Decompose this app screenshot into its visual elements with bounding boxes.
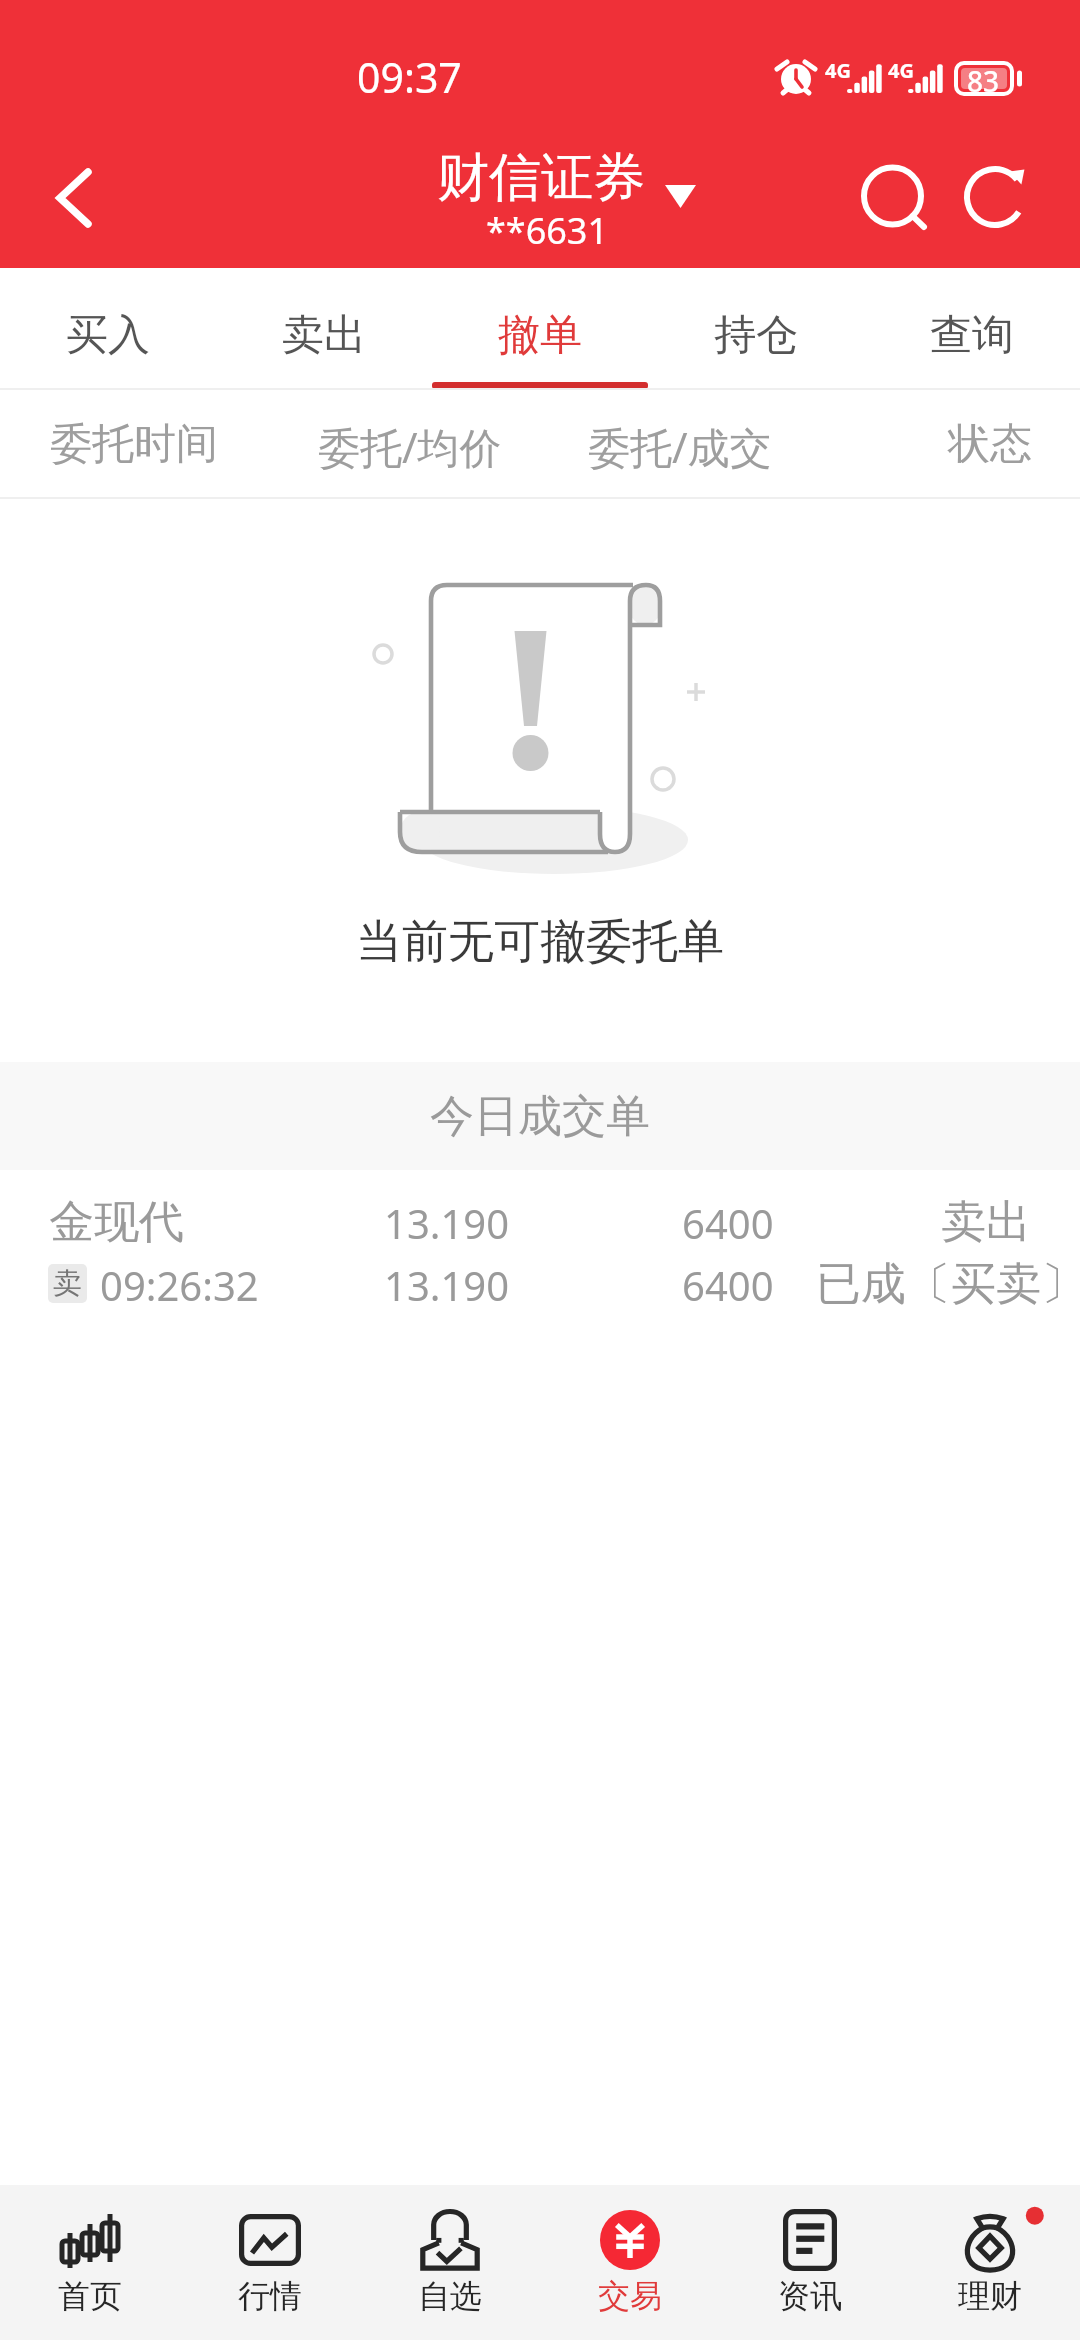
staticText: 持仓 [714,309,798,362]
staticText: 资讯 [778,2276,842,2316]
staticText: 13.190 [384,1258,510,1312]
button[interactable]: 首页 [0,2185,180,2340]
staticText: 买入 [66,309,150,362]
staticText: 09:26:32 [100,1258,259,1312]
staticText: 当前无可撤委托单 [356,913,724,971]
staticText: 4G [888,57,914,84]
button[interactable]: Back [29,152,121,244]
button[interactable]: 理财 [900,2185,1080,2340]
button[interactable]: 资讯 [720,2185,900,2340]
button[interactable]: 财信证券 [380,140,720,260]
staticText: 6400 [682,1196,774,1250]
staticText: 撤单 [498,309,582,362]
button[interactable]: Refresh [949,151,1041,243]
staticText: 委托时间 [50,418,218,471]
staticText: 4G [825,57,851,84]
staticText: 09:37 [357,49,462,105]
staticText: 理财 [958,2276,1022,2316]
button[interactable]: 持仓 [648,268,864,390]
button[interactable]: 行情 [180,2185,360,2340]
button[interactable]: 查询 [864,268,1080,390]
button[interactable]: 卖出 [216,268,432,390]
button[interactable]: Search [847,151,939,243]
button[interactable]: 金现代 [0,1170,1080,1316]
staticText: 自选 [418,2276,482,2316]
staticText: 交易 [598,2276,662,2316]
staticText: 83 [967,62,1000,100]
staticText: 查询 [930,309,1014,362]
button[interactable]: 自选 [360,2185,540,2340]
staticText: 卖 [53,1265,82,1302]
staticText: 首页 [58,2276,122,2316]
staticText: 委托/成交 [588,418,772,475]
staticText: **6631 [486,206,609,255]
staticText: 已成〔买卖〕 [816,1256,1080,1313]
button[interactable]: 撤单 [432,268,648,390]
staticText: 行情 [238,2276,302,2316]
staticText: 委托/均价 [318,418,502,475]
staticText: 金现代 [49,1194,184,1251]
staticText: 财信证券 [437,145,645,211]
staticText: 卖出 [941,1194,1031,1251]
staticText: 状态 [948,418,1032,471]
button[interactable]: 交易 [540,2185,720,2340]
staticText: 6400 [682,1258,774,1312]
staticText: 卖出 [282,309,366,362]
staticText: 今日成交单 [430,1089,650,1144]
button[interactable]: 买入 [0,268,216,390]
staticText: 13.190 [384,1196,510,1250]
